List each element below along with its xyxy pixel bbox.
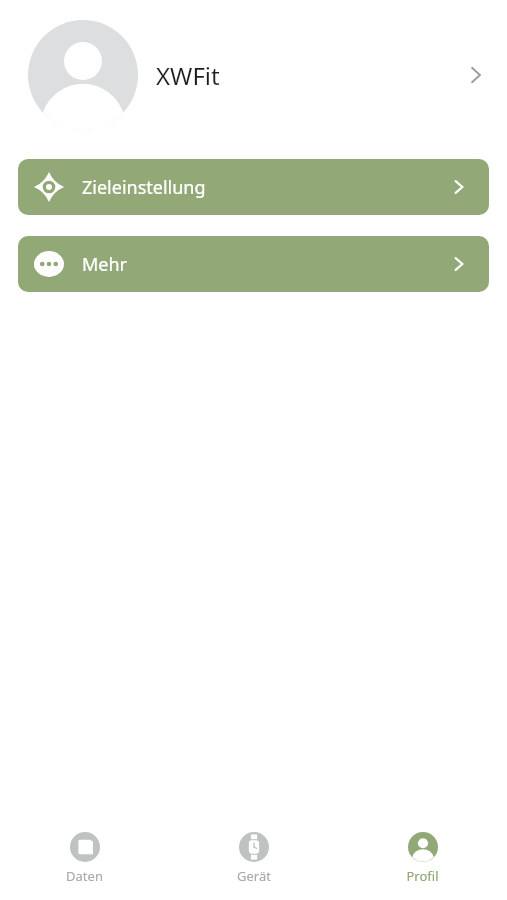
button[interactable]: Profil xyxy=(338,816,507,900)
staticText: Zieleinstellung xyxy=(82,175,206,200)
staticText: Daten xyxy=(66,867,103,885)
button[interactable]: Zieleinstellung xyxy=(18,159,489,215)
staticText: XWFit xyxy=(156,59,220,92)
button[interactable]: Gerät xyxy=(169,816,338,900)
button[interactable]: Daten xyxy=(0,816,169,900)
button[interactable]: Mehr xyxy=(18,236,489,292)
staticText: Profil xyxy=(406,867,439,885)
button[interactable]: XWFit xyxy=(0,0,507,150)
staticText: Gerät xyxy=(237,867,271,885)
staticText: Mehr xyxy=(82,252,128,277)
